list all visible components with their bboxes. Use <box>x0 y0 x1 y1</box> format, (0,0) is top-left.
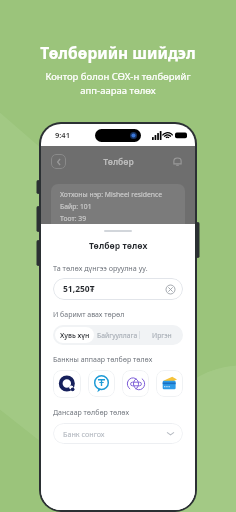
button[interactable]: 51,250₮ <box>53 278 183 300</box>
staticText: И баримт авах төрөл <box>53 310 183 320</box>
staticText: 9:41 <box>55 130 70 140</box>
staticText: Байгууллага <box>97 331 138 340</box>
staticText: Контор болон СӨХ-н төлбөрийг апп-аараа т… <box>14 70 222 97</box>
staticText: Дансаар төлбөр төлөх <box>53 408 183 418</box>
staticText: Төлбөр төлөх <box>89 240 148 252</box>
staticText: Төлбөр <box>103 156 134 168</box>
staticText: Тоот: 39 <box>60 214 87 223</box>
staticText: Банкны аппаар төлбөр төлөх <box>53 355 183 365</box>
staticText: Төлбөрийн шийдэл <box>14 42 222 63</box>
staticText: Хувь хүн <box>60 331 90 340</box>
staticText: Байр: 101 <box>60 202 92 211</box>
button[interactable]: Back <box>51 154 66 169</box>
staticText: Банк сонгох <box>63 429 105 439</box>
staticText: 51,250₮ <box>63 283 95 295</box>
button[interactable]: Иргэн <box>140 325 183 345</box>
button[interactable]: Qpay <box>53 370 81 398</box>
button[interactable]: Notifications <box>169 153 185 169</box>
button[interactable]: Monpay <box>122 370 149 397</box>
button[interactable]: Clear <box>166 285 175 294</box>
button[interactable]: Хувь хүн <box>55 327 94 343</box>
button[interactable]: Card <box>156 370 183 397</box>
button[interactable]: Tugrug pay <box>88 370 115 397</box>
staticText: Та төлөх дүнгээ оруулна уу. <box>53 263 183 273</box>
staticText: Хотхоны нэр: Misheel residence <box>60 190 163 199</box>
staticText: Иргэн <box>152 331 172 340</box>
button[interactable]: Байгууллага <box>96 325 139 345</box>
button[interactable]: Банк сонгох <box>53 423 183 444</box>
